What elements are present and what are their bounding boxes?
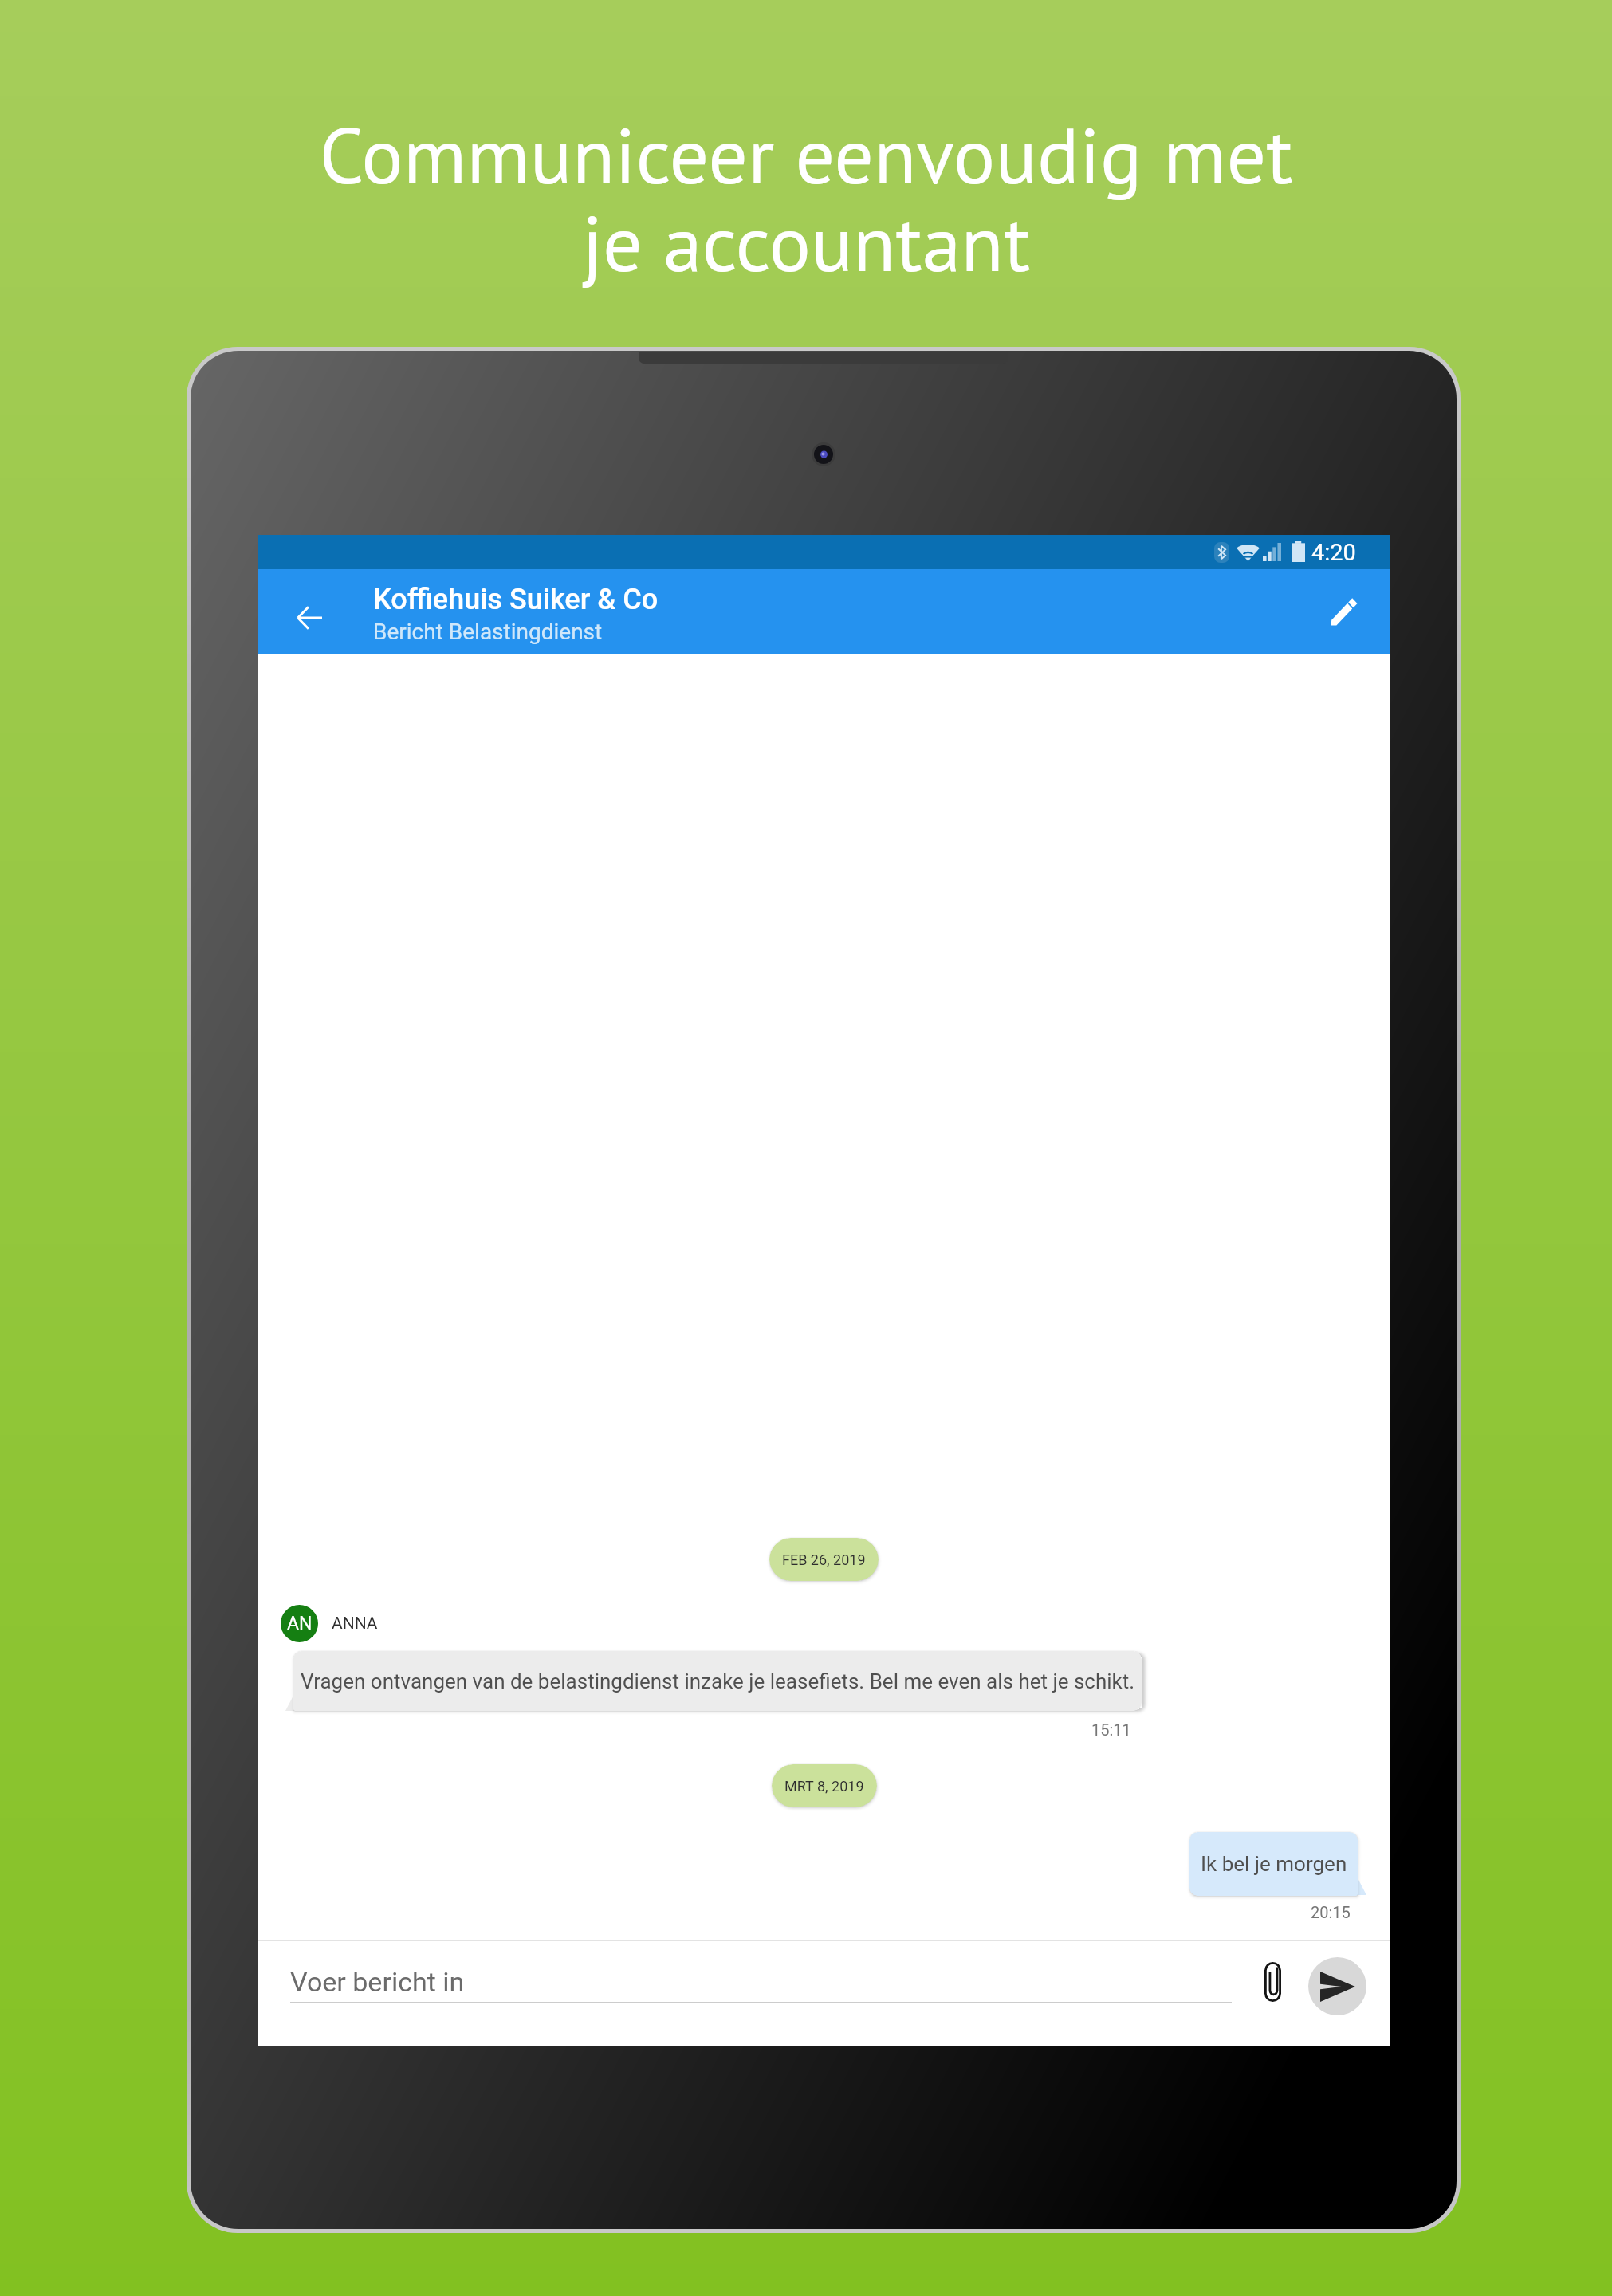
staticText: Ik bel je morgen — [1201, 1852, 1347, 1876]
staticText: 20:15 — [1311, 1903, 1351, 1921]
button[interactable]: Edit message — [1306, 569, 1382, 654]
button[interactable]: Back — [271, 584, 348, 652]
staticText: MRT 8, 2019 — [784, 1778, 864, 1795]
staticText: 4:20 — [1311, 539, 1356, 566]
staticText: Communiceer eenvoudig met je accountant — [0, 104, 1612, 293]
button[interactable]: Voer bericht in — [290, 1957, 1232, 2005]
staticText: Voer bericht in — [290, 1966, 465, 1998]
button[interactable]: Send message — [1308, 1957, 1366, 2015]
staticText: Koffiehuis Suiker & Co — [373, 583, 659, 616]
button[interactable]: AN — [281, 1605, 378, 1642]
staticText: 15:11 — [1091, 1720, 1131, 1739]
button[interactable]: Vragen ontvangen van de belastingdienst … — [293, 1651, 1142, 1711]
staticText: Bericht Belastingdienst — [373, 619, 603, 645]
button[interactable]: Ik bel je morgen — [1189, 1832, 1358, 1896]
button[interactable]: Attach file — [1244, 1954, 1300, 2010]
staticText: Vragen ontvangen van de belastingdienst … — [301, 1669, 1135, 1693]
staticText: ANNA — [332, 1614, 378, 1634]
staticText: AN — [287, 1613, 313, 1634]
staticText: FEB 26, 2019 — [782, 1551, 866, 1568]
